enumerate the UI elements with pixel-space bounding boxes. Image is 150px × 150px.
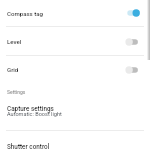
button[interactable]: Capture settings, Automatic: Boost light [0, 99, 150, 130]
staticText: Level [7, 38, 22, 45]
button[interactable]: Grid, off [120, 61, 146, 79]
button[interactable]: Level [0, 27, 150, 55]
staticText: Settings [7, 89, 26, 95]
staticText: Capture settings [7, 105, 54, 112]
staticText: Compass tag [7, 10, 44, 17]
button[interactable]: Compass tag [0, 0, 150, 27]
button[interactable]: Level, off [120, 33, 146, 51]
staticText: Automatic: Boost light [7, 111, 62, 118]
staticText: Shutter control [7, 143, 50, 150]
button[interactable]: Compass tag, on [120, 4, 146, 22]
button[interactable]: Shutter control [0, 131, 150, 150]
button[interactable]: Grid [0, 55, 150, 83]
staticText: Grid [7, 66, 19, 73]
